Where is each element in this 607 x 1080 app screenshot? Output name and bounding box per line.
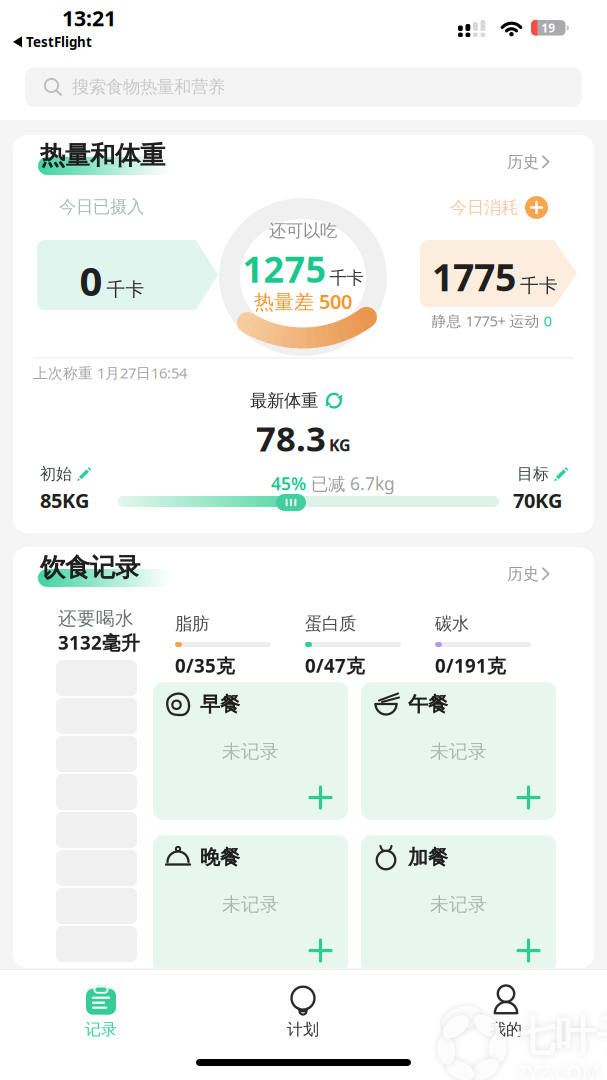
staticText: 3132毫升	[58, 630, 140, 655]
staticText: 78.3	[256, 415, 326, 461]
staticText: 记录	[85, 1020, 117, 1039]
staticText: 午餐	[408, 692, 448, 717]
staticText: 历史	[507, 564, 539, 584]
button[interactable]: 历史	[507, 564, 549, 584]
staticText: 未记录	[222, 893, 279, 916]
staticText: 千卡	[106, 278, 144, 301]
staticText: 早餐	[200, 692, 240, 717]
button[interactable]: 添加晚餐	[153, 835, 348, 973]
button[interactable]: 计划	[268, 985, 338, 1040]
staticText: 我的	[490, 1020, 522, 1039]
staticText: 19	[541, 20, 555, 36]
staticText: 70KG	[513, 487, 562, 514]
button[interactable]: 记录	[66, 985, 136, 1040]
staticText: 45%	[271, 472, 306, 495]
staticText: 目标	[517, 464, 549, 484]
staticText: 0	[79, 254, 102, 307]
staticText: 蛋白质	[305, 613, 356, 634]
staticText: 还要喝水	[58, 607, 134, 630]
staticText: 0/47克	[305, 653, 365, 678]
staticText: 饮食记录	[40, 552, 140, 583]
staticText: 0	[543, 311, 551, 330]
staticText: 0/35克	[175, 653, 235, 678]
staticText: 热量和体重	[40, 140, 165, 171]
staticText: 1275	[242, 245, 326, 293]
staticText: TestFlight	[26, 33, 92, 51]
staticText: 碳水	[435, 613, 469, 634]
button[interactable]: 搜索食物热量和营养	[25, 67, 582, 107]
staticText: 千卡	[329, 267, 363, 289]
staticText: 未记录	[430, 740, 487, 763]
staticText: 千卡	[520, 274, 558, 297]
staticText: 已减 6.7kg	[311, 472, 395, 495]
staticText: 加餐	[408, 845, 448, 870]
staticText: 历史	[507, 152, 539, 172]
staticText: 上次称重 1月27日16:54	[33, 363, 187, 382]
staticText: 七叶子	[514, 1011, 607, 1062]
staticText: 今日已摄入	[59, 196, 144, 217]
staticText: 未记录	[222, 740, 279, 763]
button[interactable]: 我的	[471, 985, 541, 1040]
button[interactable]: 历史	[507, 152, 549, 172]
staticText: 85KG	[40, 487, 89, 514]
staticText: 计划	[287, 1020, 319, 1039]
staticText: 初始	[40, 464, 72, 484]
staticText: 未记录	[430, 893, 487, 916]
staticText: 13:21	[62, 4, 116, 32]
button[interactable]: 添加午餐	[361, 682, 556, 820]
staticText: 热量差 500	[254, 288, 352, 315]
button[interactable]: 刷新体重	[250, 390, 343, 411]
staticText: 最新体重	[250, 390, 318, 411]
button[interactable]: 添加运动	[450, 196, 548, 219]
staticText: 静息 1775+ 运动	[431, 311, 543, 330]
button[interactable]: 编辑初始体重	[40, 464, 92, 484]
staticText: 晚餐	[200, 845, 240, 870]
button[interactable]: 编辑目标体重	[517, 464, 569, 484]
staticText: 搜索食物热量和营养	[72, 76, 225, 98]
button[interactable]: 添加早餐	[153, 682, 348, 820]
button[interactable]: Back to TestFlight	[13, 33, 92, 51]
staticText: 今日消耗	[450, 197, 518, 218]
staticText: KG	[329, 434, 351, 456]
staticText: 还可以吃	[269, 220, 337, 241]
staticText: 1775	[432, 252, 516, 302]
staticText: 0/191克	[435, 653, 506, 678]
button[interactable]: 添加加餐	[361, 835, 556, 973]
staticText: 脂肪	[175, 613, 209, 634]
